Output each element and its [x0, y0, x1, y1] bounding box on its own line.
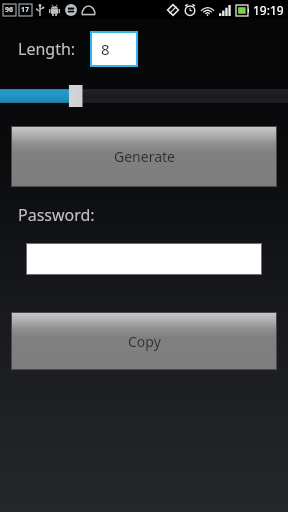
staticText: 8 — [101, 39, 110, 59]
staticText: Password: — [18, 204, 95, 226]
staticText: Copy — [128, 332, 161, 351]
staticText: 19:19 — [253, 2, 284, 18]
staticText: Generate — [114, 147, 175, 166]
button[interactable] — [0, 85, 288, 107]
button[interactable]: Copy — [11, 312, 277, 370]
staticText: 96 — [5, 5, 14, 15]
staticText: 17 — [21, 5, 30, 15]
button[interactable]: 8 — [92, 33, 136, 65]
button[interactable]: Generate — [11, 126, 277, 187]
staticText: Length: — [18, 38, 76, 60]
